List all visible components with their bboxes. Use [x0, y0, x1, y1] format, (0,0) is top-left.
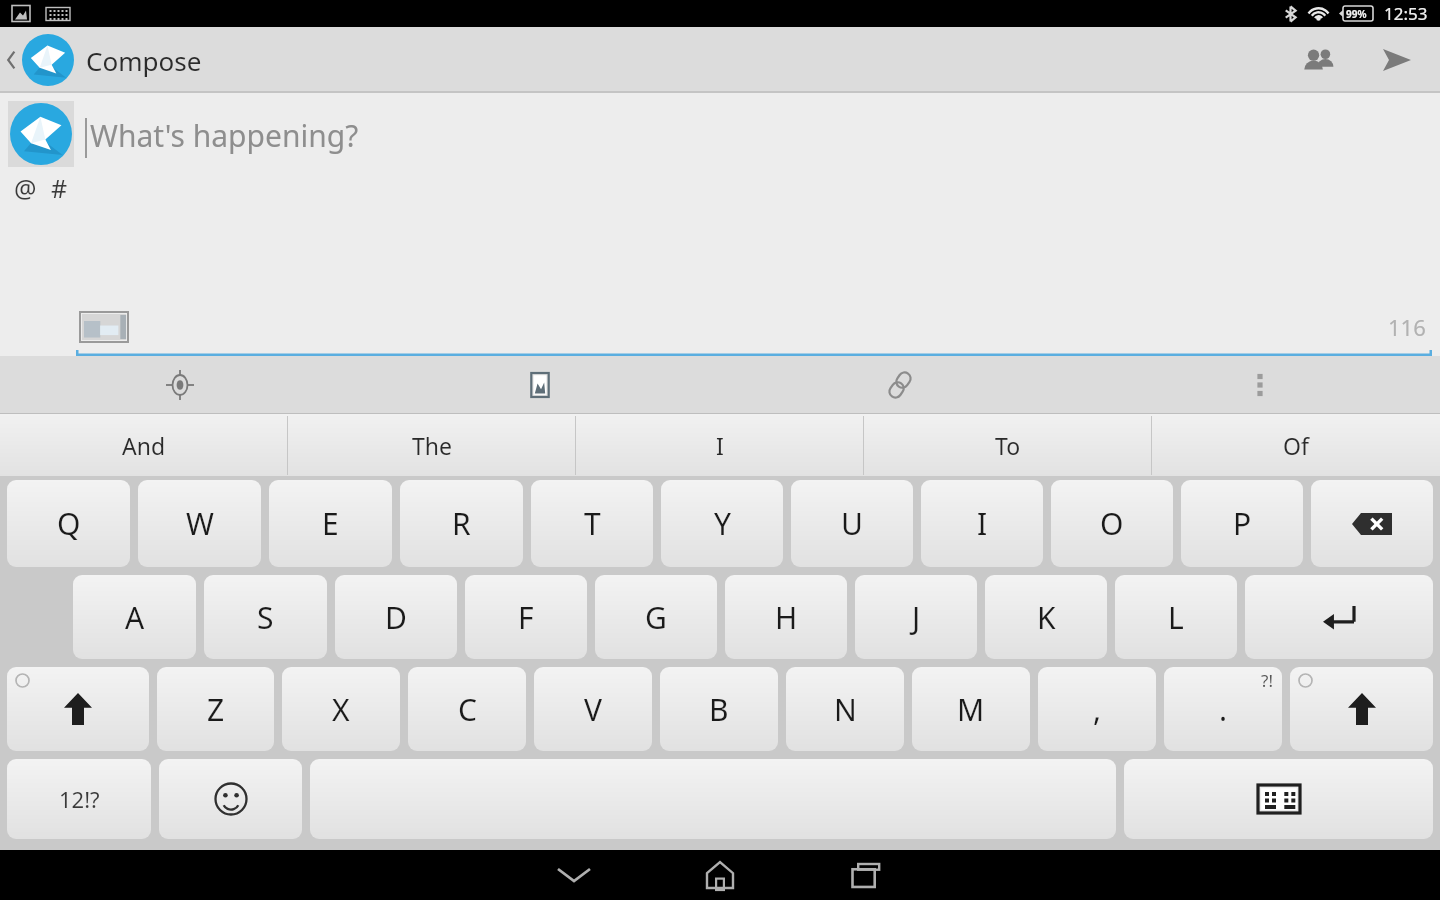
staticText: O	[1100, 503, 1124, 544]
button[interactable]: H	[725, 575, 847, 659]
button[interactable]: Send	[1374, 37, 1420, 83]
staticText: .	[1219, 689, 1228, 730]
button[interactable]: .	[1164, 667, 1282, 751]
button[interactable]: To	[864, 414, 1152, 476]
button[interactable]: And	[0, 414, 288, 476]
button[interactable]: Emoji	[159, 759, 302, 839]
button[interactable]: J	[855, 575, 977, 659]
button[interactable]: O	[1051, 480, 1173, 567]
button[interactable]: G	[595, 575, 717, 659]
button[interactable]: #	[51, 171, 68, 205]
staticText: ?!	[1261, 669, 1273, 692]
staticText: E	[322, 503, 339, 544]
button[interactable]: Of	[1152, 414, 1440, 476]
staticText: V	[584, 689, 602, 730]
button[interactable]: V	[534, 667, 652, 751]
button[interactable]: K	[985, 575, 1107, 659]
staticText: What's happening?	[90, 115, 359, 156]
button[interactable]: F	[465, 575, 587, 659]
button[interactable]: 12!?	[7, 759, 151, 839]
button[interactable]: E	[269, 480, 392, 567]
button[interactable]: The	[288, 414, 576, 476]
button[interactable]: Location	[0, 356, 360, 414]
button[interactable]: ,	[1038, 667, 1156, 751]
button[interactable]: P	[1181, 480, 1303, 567]
staticText: I	[716, 430, 724, 461]
staticText: R	[452, 503, 471, 544]
staticText: The	[412, 430, 452, 461]
staticText: K	[1037, 597, 1056, 638]
button[interactable]: Q	[7, 480, 130, 567]
button[interactable]: N	[786, 667, 904, 751]
staticText: P	[1233, 503, 1252, 544]
staticText: N	[834, 689, 857, 730]
staticText: I	[977, 503, 988, 544]
staticText: U	[841, 503, 863, 544]
button[interactable]: Shift	[1290, 667, 1433, 751]
staticText: To	[995, 430, 1021, 461]
staticText: B	[709, 689, 729, 730]
button[interactable]: Shift	[7, 667, 149, 751]
button[interactable]: S	[204, 575, 327, 659]
button[interactable]: Attached image	[80, 312, 128, 342]
button[interactable]: A	[73, 575, 196, 659]
staticText: 12:53	[1384, 2, 1428, 25]
staticText: Q	[57, 503, 81, 544]
staticText: Of	[1283, 430, 1309, 461]
staticText: W	[186, 503, 214, 544]
button[interactable]: I	[921, 480, 1043, 567]
button[interactable]: B	[660, 667, 778, 751]
button[interactable]: Back	[0, 34, 212, 86]
button[interactable]: Recent apps	[837, 850, 895, 900]
button[interactable]: Z	[157, 667, 274, 751]
button[interactable]: D	[335, 575, 457, 659]
staticText: Y	[714, 503, 731, 544]
staticText: C	[458, 689, 477, 730]
staticText: A	[125, 597, 145, 638]
button[interactable]: R	[400, 480, 523, 567]
staticText: ,	[1093, 689, 1102, 730]
staticText: #	[51, 171, 68, 205]
staticText: T	[584, 503, 601, 544]
staticText: H	[775, 597, 798, 638]
staticText: J	[912, 597, 921, 638]
staticText: Compose	[86, 43, 202, 78]
button[interactable]: Switch keyboard	[1124, 759, 1433, 839]
staticText: 12!?	[59, 784, 100, 814]
button[interactable]: Enter	[1245, 575, 1433, 659]
button[interactable]: X	[282, 667, 400, 751]
button[interactable]: Space	[310, 759, 1116, 839]
button[interactable]: T	[531, 480, 653, 567]
button[interactable]: Hide keyboard	[545, 850, 603, 900]
button[interactable]: M	[912, 667, 1030, 751]
button[interactable]: Add people	[1296, 37, 1342, 83]
staticText: S	[257, 597, 274, 638]
button[interactable]: Y	[661, 480, 783, 567]
button[interactable]: U	[791, 480, 913, 567]
staticText: And	[122, 430, 166, 461]
button[interactable]: W	[138, 480, 261, 567]
staticText: 116	[1388, 312, 1426, 342]
button[interactable]: Add link	[720, 356, 1080, 414]
staticText: @	[14, 171, 37, 205]
other: Back	[4, 47, 18, 73]
staticText: 99%	[1346, 7, 1367, 21]
staticText: L	[1168, 597, 1184, 638]
staticText: M	[957, 689, 985, 730]
button[interactable]: @	[14, 171, 37, 205]
staticText: X	[332, 689, 350, 730]
button[interactable]: Backspace	[1311, 480, 1433, 567]
button[interactable]: Home	[691, 850, 749, 900]
staticText: D	[385, 597, 407, 638]
staticText: G	[645, 597, 667, 638]
staticText: F	[518, 597, 534, 638]
button[interactable]: I	[576, 414, 864, 476]
button[interactable]: C	[408, 667, 526, 751]
staticText: Z	[207, 689, 225, 730]
button[interactable]: Add photo	[360, 356, 720, 414]
button[interactable]: More options	[1080, 356, 1440, 414]
button[interactable]: L	[1115, 575, 1237, 659]
